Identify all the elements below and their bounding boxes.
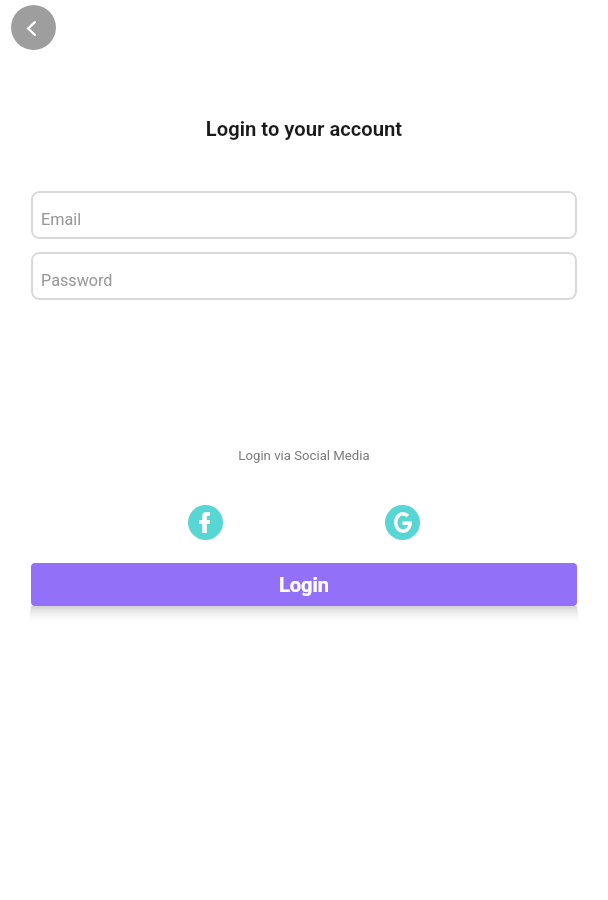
button[interactable]: Back — [11, 5, 56, 50]
button[interactable]: Password — [31, 252, 577, 300]
staticText: Login via Social Media — [0, 448, 608, 463]
button[interactable]: Sign in with Facebook — [188, 505, 223, 540]
staticText: Password — [41, 271, 113, 290]
staticText: Login — [279, 573, 330, 596]
button[interactable]: Email — [31, 191, 577, 239]
button[interactable]: Login — [31, 563, 577, 606]
staticText: Email — [41, 210, 82, 229]
staticText: Login to your account — [0, 117, 608, 141]
button[interactable]: Sign in with Google — [385, 505, 420, 540]
